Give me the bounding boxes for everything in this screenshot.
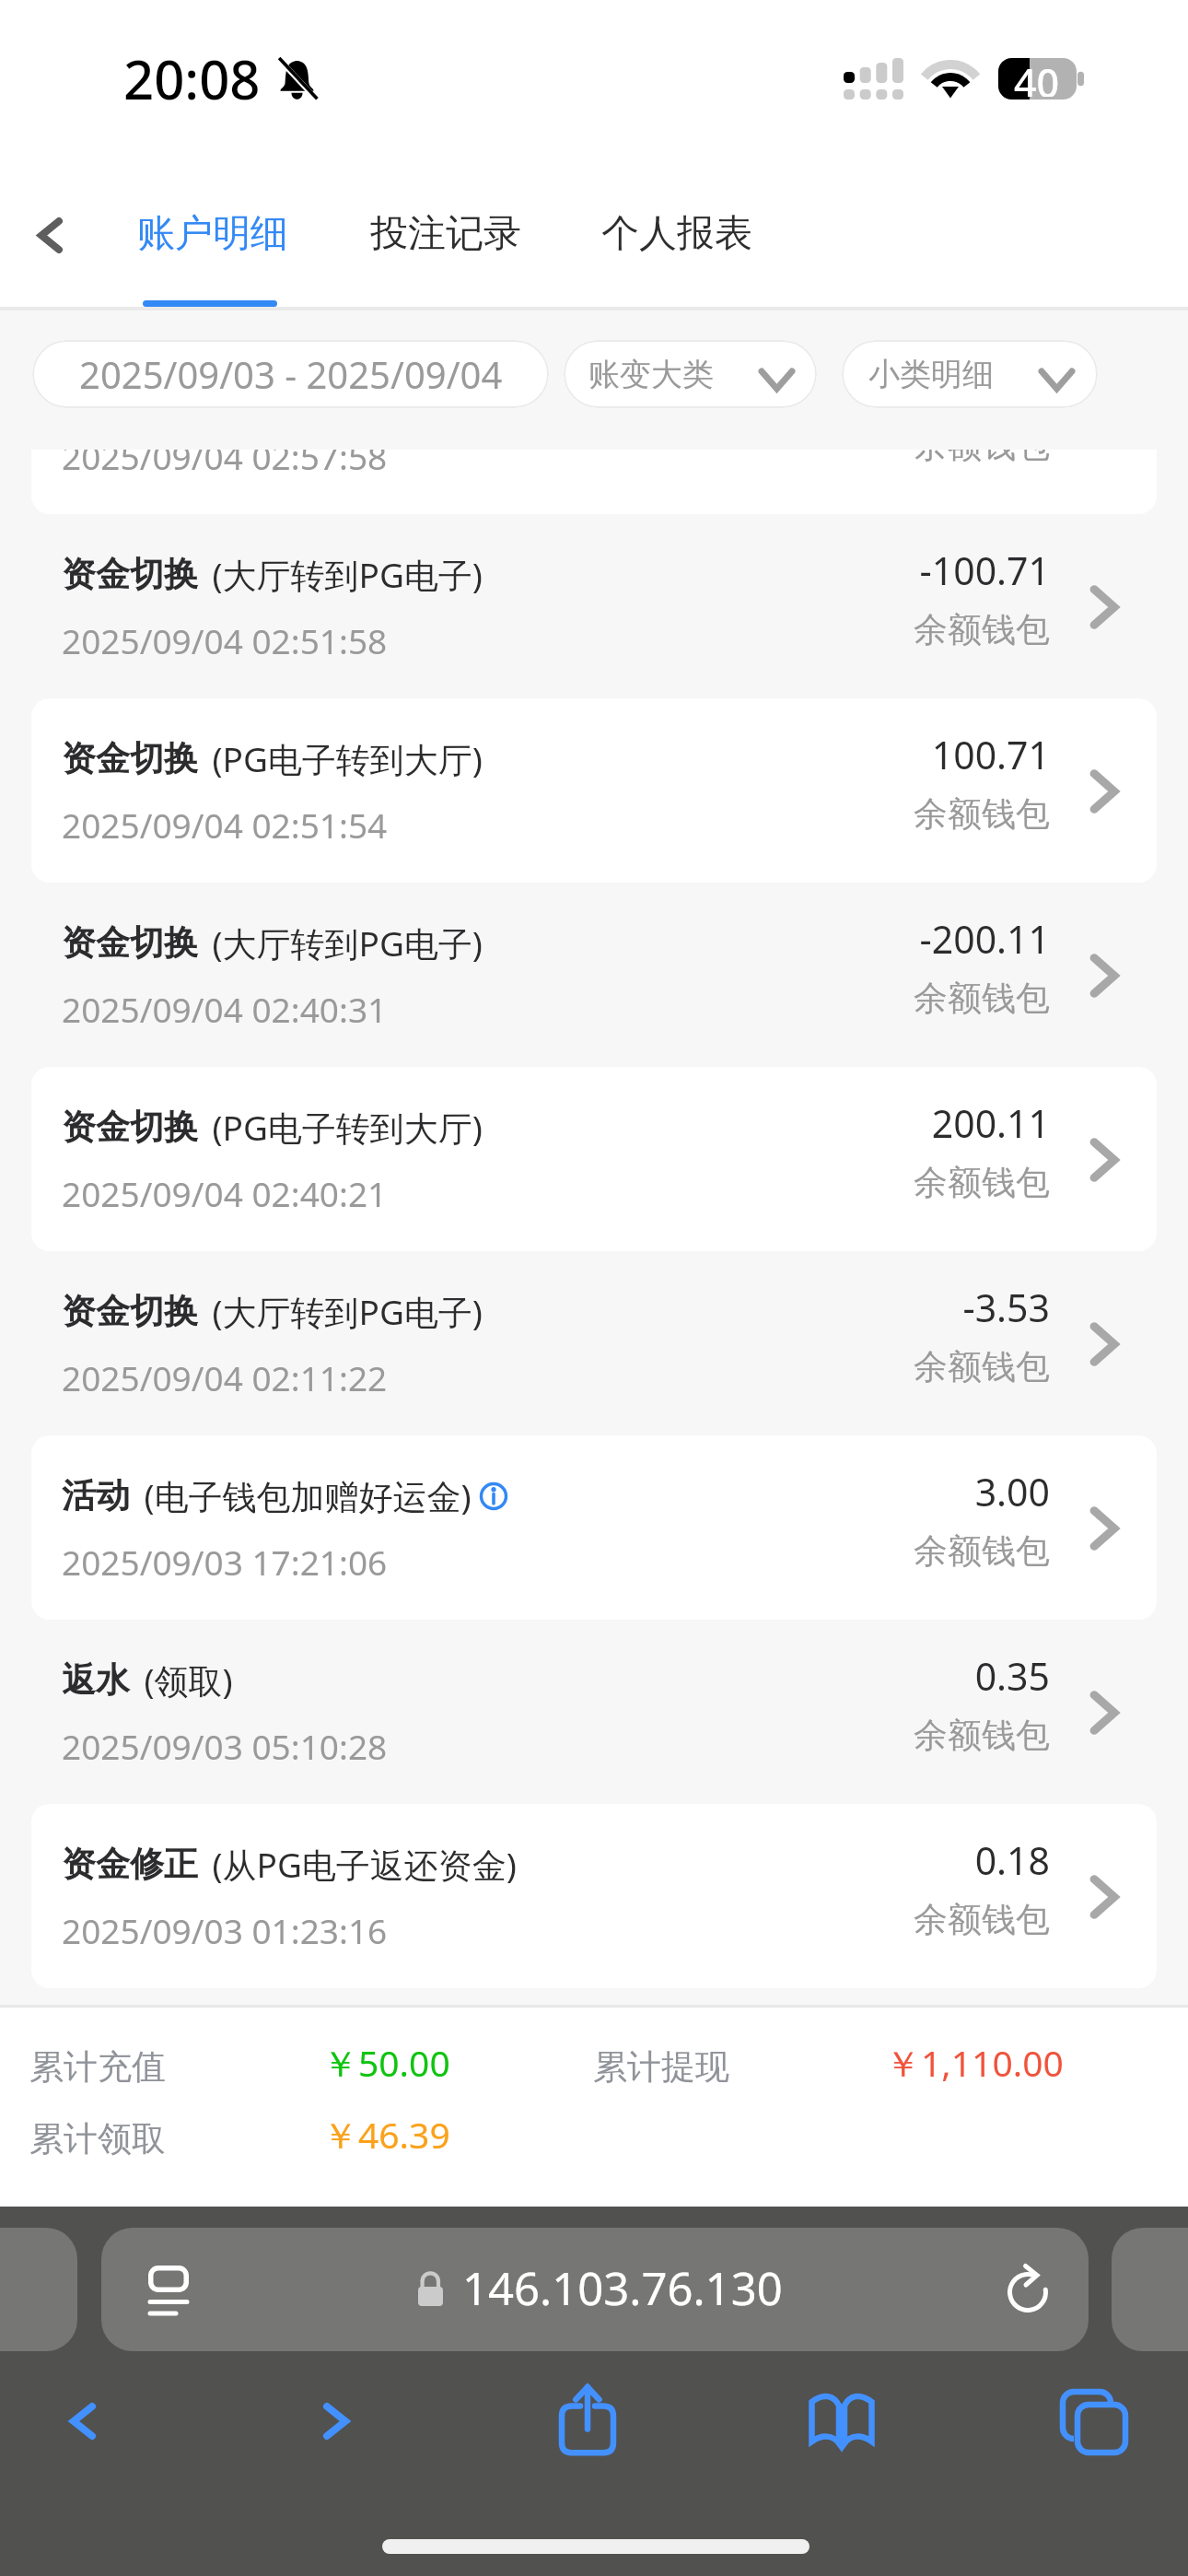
button[interactable]: 活动 bbox=[0, 1435, 1188, 1620]
staticText: 个人报表 bbox=[601, 210, 752, 258]
staticText: 活动 bbox=[62, 1474, 130, 1517]
staticText: -3.53 bbox=[774, 1282, 1050, 1333]
staticText: 余额钱包 bbox=[774, 1898, 1050, 1941]
staticText: 2025/09/04 02:51:58 bbox=[62, 617, 388, 663]
staticText: 146.103.76.130 bbox=[462, 2257, 783, 2319]
button[interactable]: Bookmarks bbox=[800, 2380, 883, 2463]
button[interactable]: 资金切换 bbox=[0, 883, 1188, 1067]
staticText: ￥1,110.00 bbox=[885, 2038, 1064, 2087]
button[interactable]: Back bbox=[40, 2380, 122, 2463]
staticText: 资金切换 bbox=[62, 553, 198, 596]
staticText: 资金切换 bbox=[62, 1290, 198, 1333]
staticText: 2025/09/04 02:51:54 bbox=[62, 802, 388, 848]
staticText: 累计领取 bbox=[29, 2117, 166, 2160]
staticText: 20:08 bbox=[123, 42, 261, 115]
staticText: -100.71 bbox=[774, 544, 1050, 596]
staticText: (PG电子转到大厅) bbox=[198, 1104, 483, 1151]
staticText: 2025/09/03 17:21:06 bbox=[62, 1539, 388, 1585]
staticText: 2025/09/04 02:57:58 bbox=[62, 448, 388, 479]
staticText: 资金切换 bbox=[62, 921, 198, 965]
staticText: 余额钱包 bbox=[774, 448, 1050, 467]
button[interactable]: 资金切换 bbox=[0, 1251, 1188, 1435]
staticText: 资金切换 bbox=[62, 737, 198, 780]
staticText: 余额钱包 bbox=[774, 1161, 1050, 1204]
button[interactable]: 账变大类 bbox=[564, 340, 817, 408]
staticText: (从PG电子返还资金) bbox=[198, 1841, 517, 1888]
staticText: 余额钱包 bbox=[774, 1714, 1050, 1757]
staticText: (PG电子转到大厅) bbox=[198, 735, 483, 782]
staticText: -200.11 bbox=[774, 913, 1050, 965]
staticText: 200.11 bbox=[774, 1097, 1050, 1149]
button[interactable]: 投注记录 bbox=[334, 184, 552, 313]
staticText: 0.35 bbox=[774, 1650, 1050, 1702]
button[interactable]: Share bbox=[546, 2380, 629, 2463]
staticText: 3.00 bbox=[774, 1466, 1050, 1517]
staticText: 余额钱包 bbox=[774, 608, 1050, 651]
button[interactable]: Forward bbox=[297, 2380, 379, 2463]
staticText: (大厅转到PG电子) bbox=[198, 1288, 483, 1335]
staticText: 2025/09/03 - 2025/09/04 bbox=[79, 349, 503, 399]
staticText: 资金修正 bbox=[62, 1843, 198, 1886]
staticText: 2025/09/04 02:40:21 bbox=[62, 1170, 388, 1216]
button[interactable]: Address bar 146.103.76.130 bbox=[101, 2228, 1089, 2351]
staticText: 投注记录 bbox=[370, 210, 521, 258]
staticText: 2025/09/03 01:23:16 bbox=[62, 1907, 388, 1953]
staticText: 余额钱包 bbox=[774, 1345, 1050, 1388]
button[interactable]: Previous tab bbox=[0, 2228, 77, 2351]
button[interactable]: Page settings bbox=[130, 2247, 207, 2332]
staticText: 返水 bbox=[62, 1658, 130, 1702]
staticText: (大厅转到PG电子) bbox=[198, 551, 483, 598]
button[interactable]: 账户明细 bbox=[101, 184, 319, 313]
staticText: 2025/09/04 02:11:22 bbox=[62, 1354, 388, 1400]
staticText: 余额钱包 bbox=[774, 977, 1050, 1020]
button[interactable]: Back bbox=[8, 193, 91, 276]
staticText: 账变大类 bbox=[588, 355, 714, 394]
staticText: ￥46.39 bbox=[322, 2110, 450, 2159]
button[interactable]: Next tab bbox=[1112, 2228, 1188, 2351]
staticText: 累计充值 bbox=[29, 2045, 166, 2089]
button[interactable]: 资金切换 bbox=[0, 698, 1188, 883]
staticText: (大厅转到PG电子) bbox=[198, 919, 483, 966]
staticText: 账户明细 bbox=[137, 210, 288, 258]
staticText: (领取) bbox=[130, 1657, 233, 1704]
button[interactable]: 资金修正 bbox=[0, 1804, 1188, 1988]
staticText: (电子钱包加赠好运金) bbox=[130, 1472, 472, 1519]
button[interactable]: Tabs bbox=[1053, 2380, 1136, 2463]
staticText: 100.71 bbox=[774, 729, 1050, 780]
button[interactable]: 个人报表 bbox=[565, 184, 783, 313]
staticText: 40 bbox=[1014, 55, 1060, 97]
button[interactable]: 返水 bbox=[0, 1620, 1188, 1804]
staticText: 余额钱包 bbox=[774, 792, 1050, 836]
staticText: 余额钱包 bbox=[774, 1529, 1050, 1573]
button[interactable]: 资金切换 bbox=[0, 1067, 1188, 1251]
button[interactable]: 小类明细 bbox=[842, 340, 1098, 408]
staticText: 小类明细 bbox=[868, 355, 994, 394]
staticText: 2025/09/04 02:40:31 bbox=[62, 986, 388, 1032]
staticText: ￥50.00 bbox=[322, 2038, 450, 2087]
staticText: 累计提现 bbox=[593, 2045, 729, 2089]
staticText: 0.18 bbox=[774, 1834, 1050, 1886]
button[interactable]: 资金切换 bbox=[0, 514, 1188, 698]
staticText: 资金切换 bbox=[62, 1106, 198, 1149]
button[interactable]: Reload bbox=[986, 2251, 1069, 2334]
button[interactable]: 2025/09/03 - 2025/09/04 bbox=[32, 340, 549, 408]
staticText: 2025/09/03 05:10:28 bbox=[62, 1723, 388, 1769]
